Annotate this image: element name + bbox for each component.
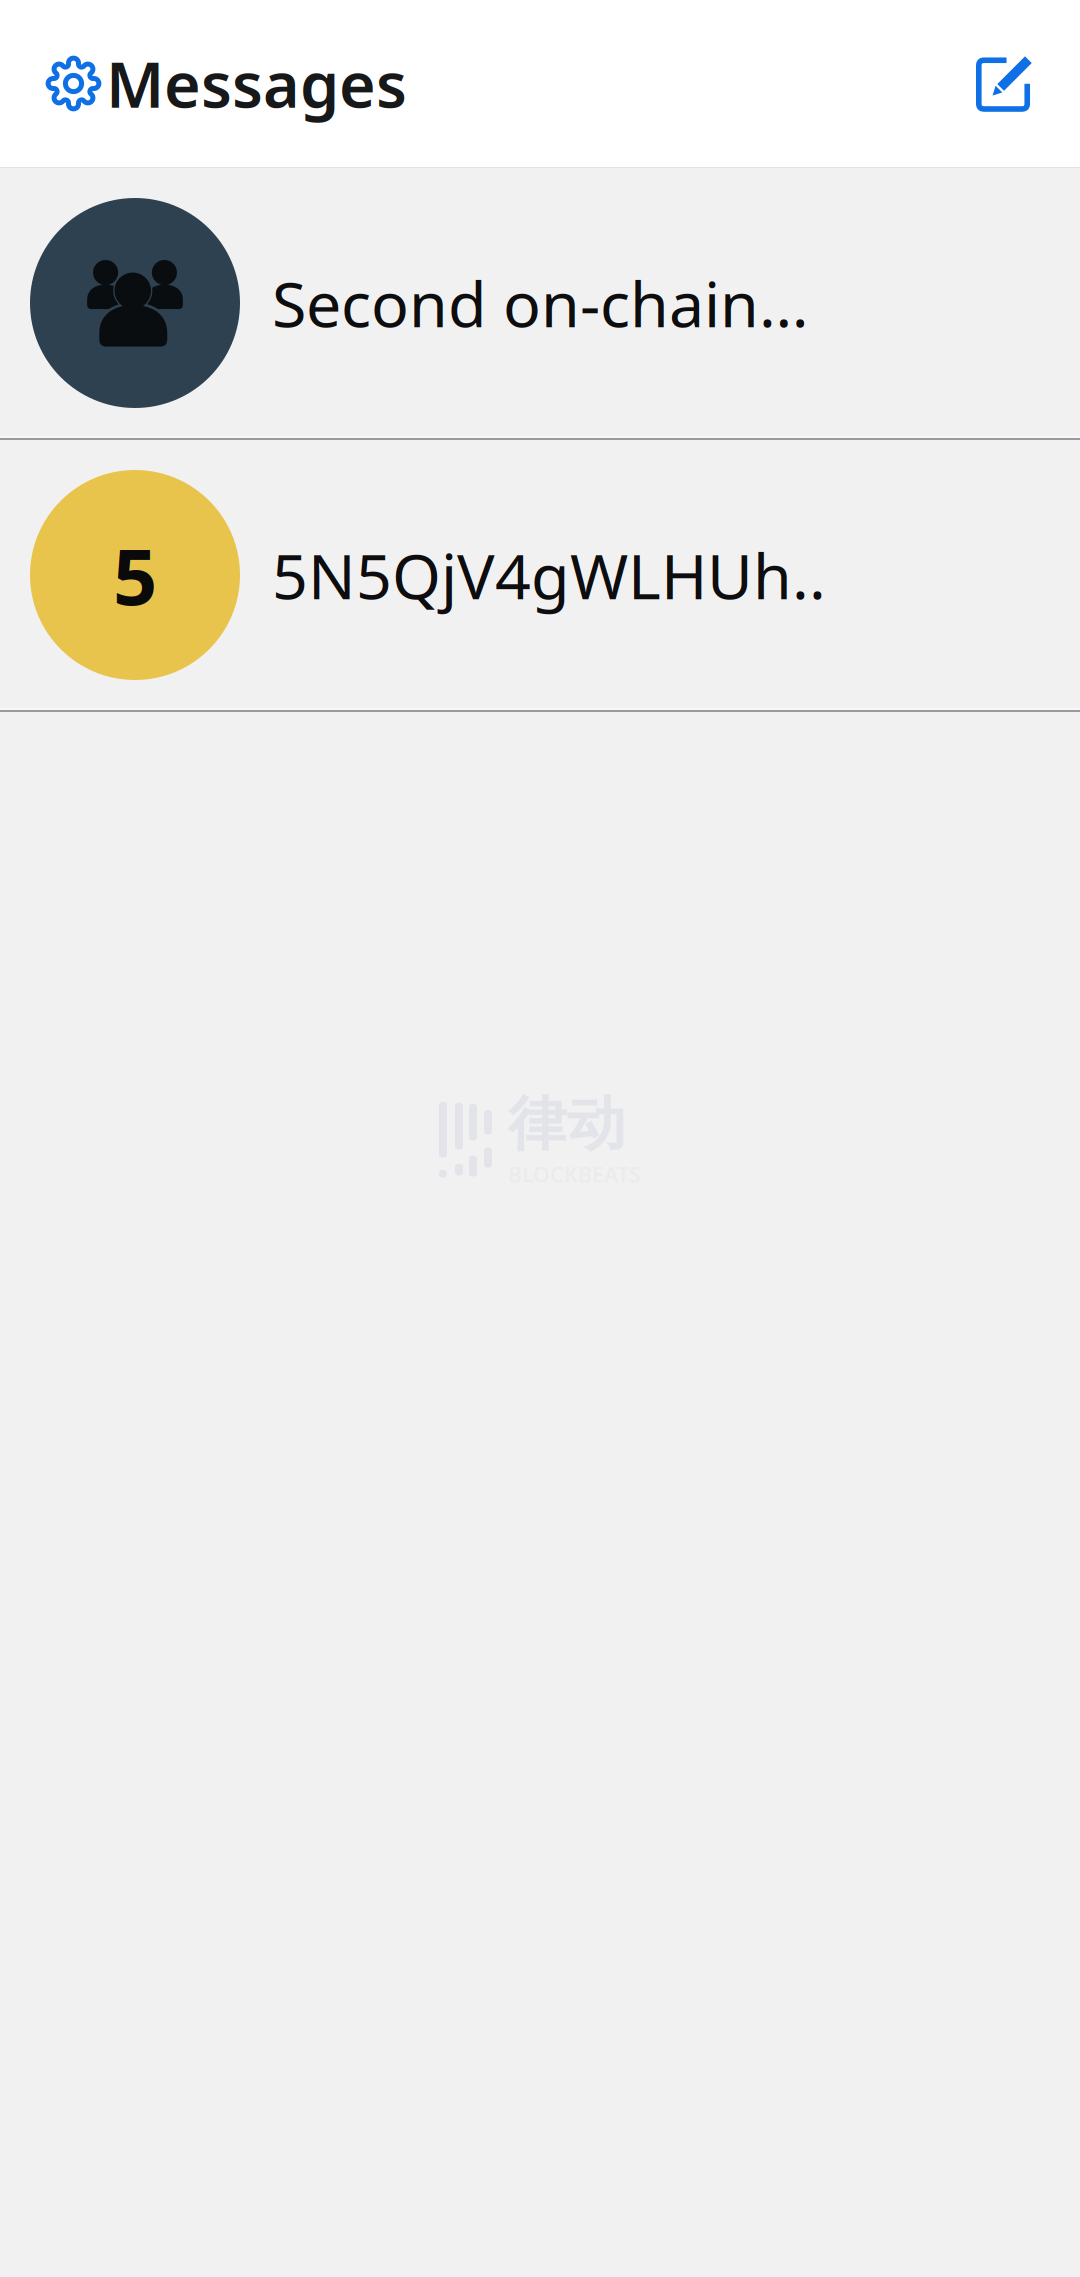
- button[interactable]: 5: [0, 440, 1080, 710]
- staticText: 5N5QjV4gWLHUh..: [272, 533, 826, 617]
- staticText: 5: [113, 524, 157, 626]
- staticText: Messages: [106, 42, 407, 125]
- button[interactable]: Compose: [956, 41, 1080, 125]
- staticText: 律动: [508, 1088, 626, 1160]
- button[interactable]: Second on-chain…: [0, 168, 1080, 438]
- button[interactable]: Messages: [0, 24, 417, 143]
- staticText: Second on-chain…: [272, 261, 809, 345]
